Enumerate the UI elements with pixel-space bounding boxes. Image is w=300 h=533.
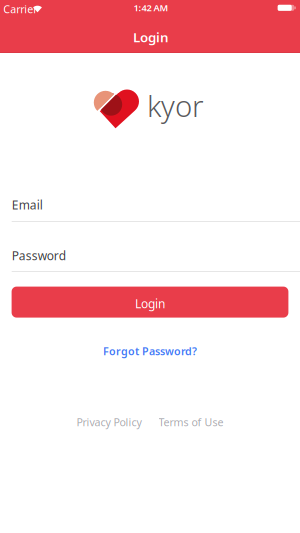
staticText: Password bbox=[12, 247, 66, 263]
button[interactable]: Password bbox=[12, 238, 300, 272]
staticText: Carrier bbox=[3, 2, 37, 16]
staticText: kyor bbox=[147, 86, 204, 125]
staticText: Login bbox=[133, 28, 169, 46]
staticText: Login bbox=[135, 296, 165, 311]
button[interactable]: Terms of Use bbox=[158, 412, 223, 432]
button[interactable]: Forgot Password? bbox=[103, 339, 197, 363]
staticText: Email bbox=[12, 197, 43, 213]
staticText: Privacy Policy bbox=[76, 415, 141, 429]
button[interactable]: Privacy Policy bbox=[76, 412, 141, 432]
button[interactable]: Email bbox=[12, 188, 300, 222]
staticText: Forgot Password? bbox=[103, 344, 197, 358]
staticText: 1:42 AM bbox=[133, 1, 168, 14]
button[interactable]: Login bbox=[12, 287, 288, 318]
staticText: Terms of Use bbox=[158, 415, 223, 429]
